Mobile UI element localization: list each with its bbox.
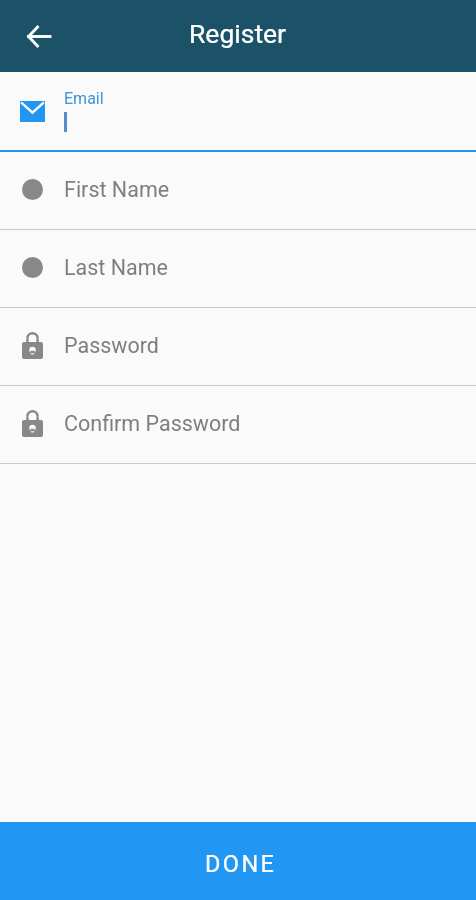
staticText: Password — [64, 333, 159, 358]
staticText: First Name — [64, 177, 170, 202]
staticText: DONE — [205, 850, 277, 878]
button[interactable]: Email — [0, 72, 476, 152]
button[interactable]: Password — [0, 308, 476, 386]
button[interactable]: DONE — [0, 822, 476, 900]
button[interactable]: Confirm Password — [0, 386, 476, 464]
button[interactable]: Last Name — [0, 230, 476, 308]
staticText: Register — [189, 18, 287, 49]
button[interactable]: First Name — [0, 152, 476, 230]
staticText: Email — [64, 89, 104, 108]
button[interactable]: Back — [14, 12, 62, 60]
staticText: Confirm Password — [64, 411, 241, 436]
staticText: Last Name — [64, 255, 169, 280]
